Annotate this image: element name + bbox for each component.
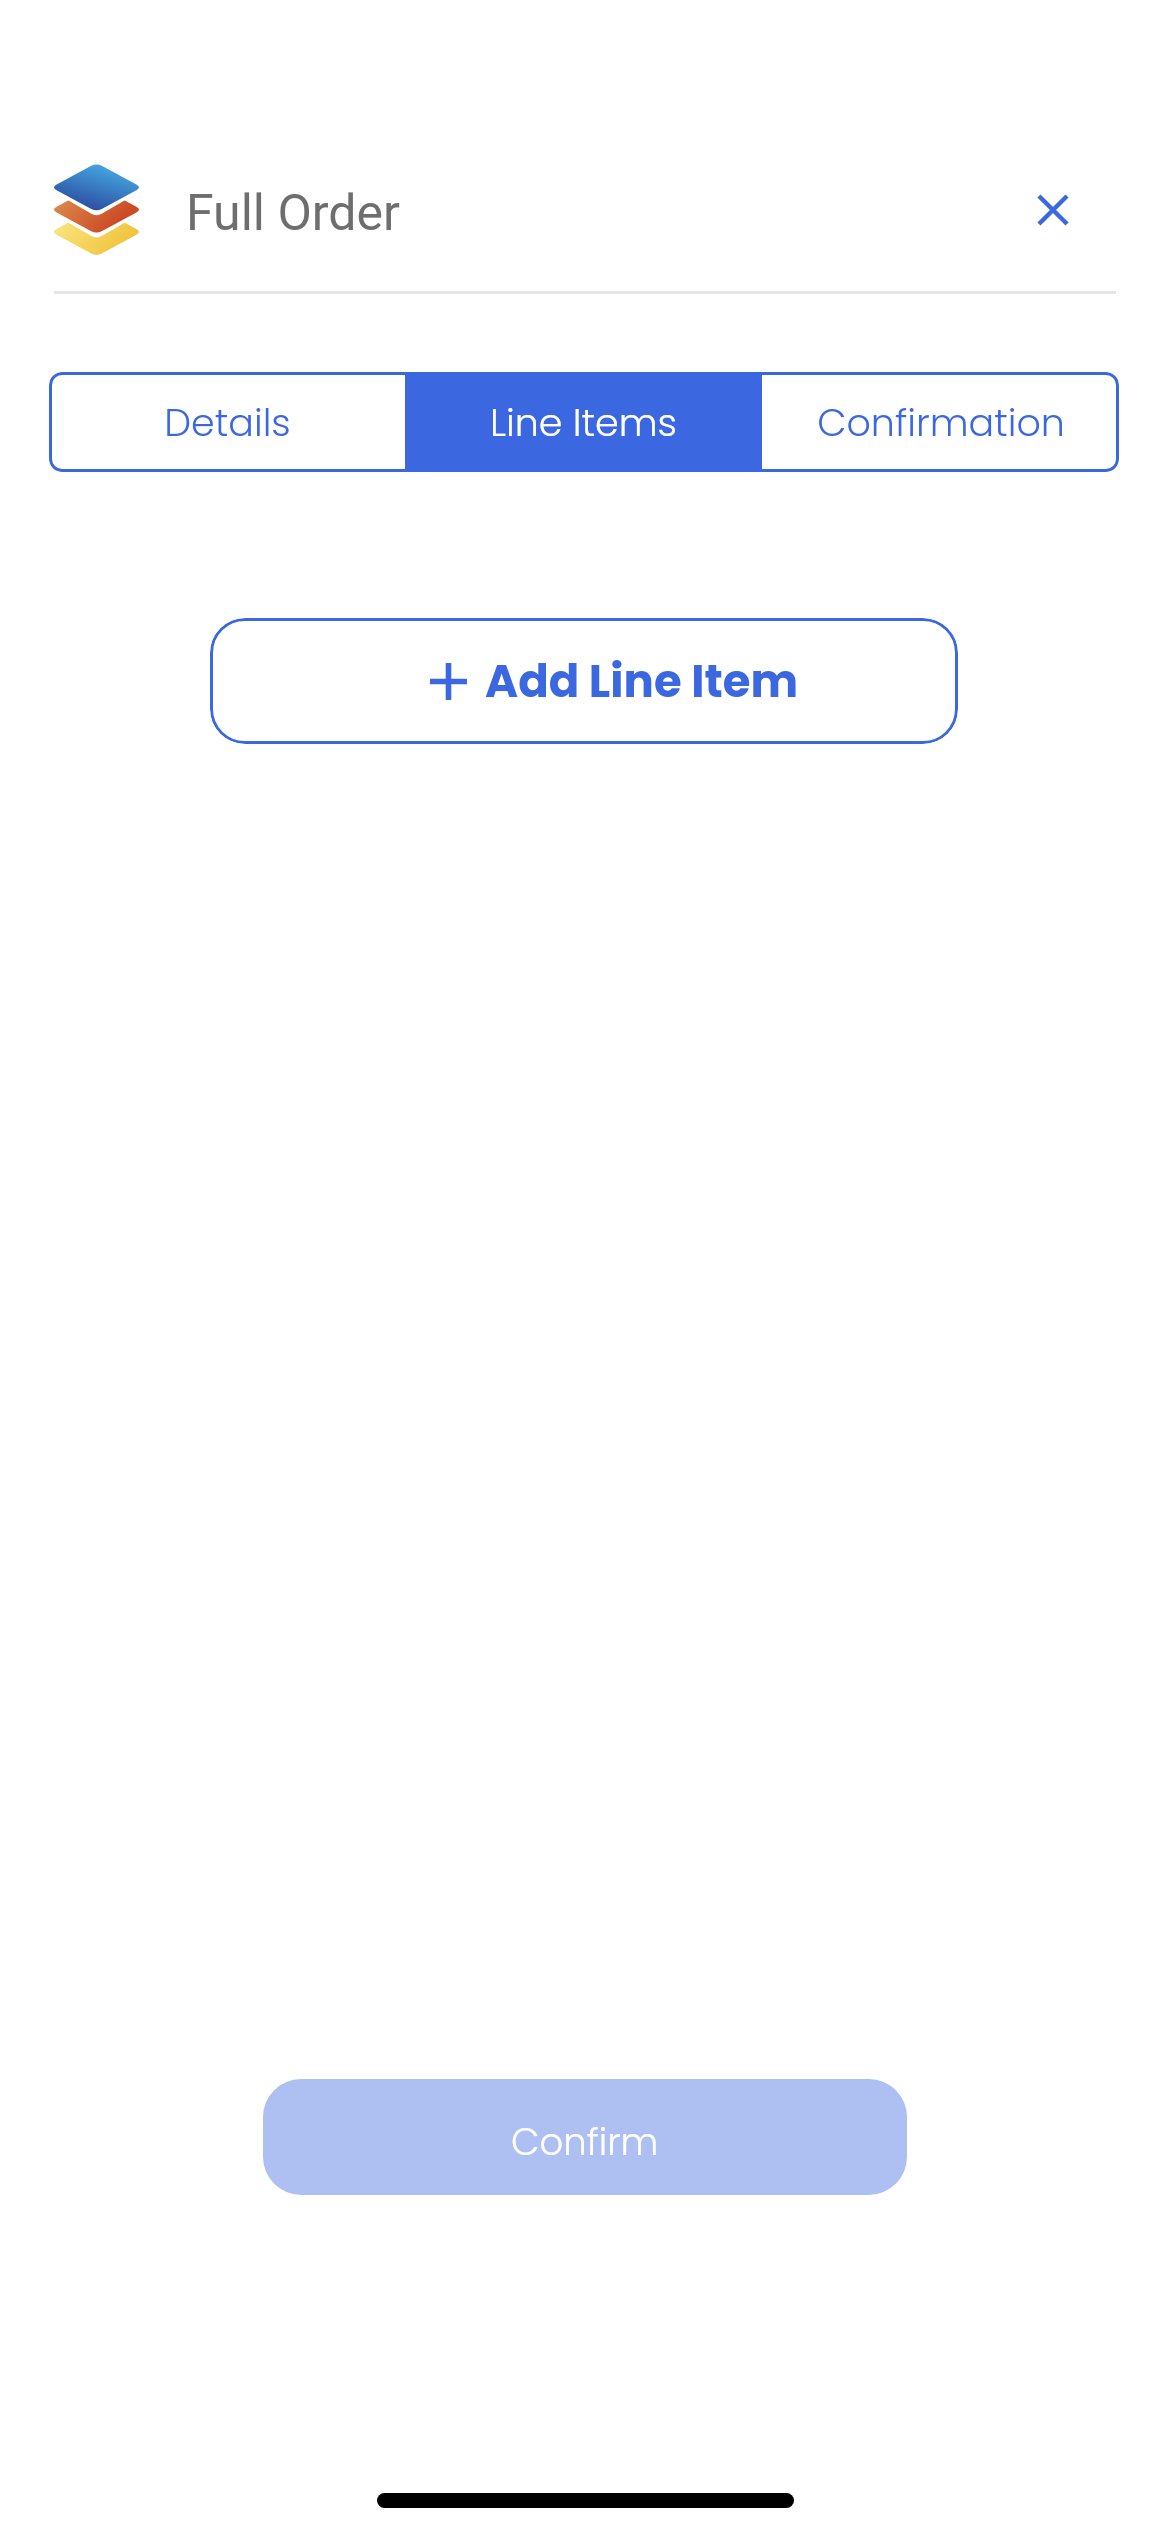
- button[interactable]: Confirmation: [762, 372, 1119, 472]
- staticText: Full Order: [186, 184, 400, 243]
- staticText: Add Line Item: [485, 650, 799, 713]
- staticText: Confirmation: [817, 396, 1065, 449]
- staticText: Details: [164, 396, 291, 449]
- staticText: Confirm: [511, 2116, 659, 2168]
- button[interactable]: Confirm: [263, 2079, 907, 2195]
- button[interactable]: Add Line Item: [210, 618, 958, 744]
- button[interactable]: Details: [49, 372, 405, 472]
- staticText: Line Items: [490, 396, 677, 449]
- button[interactable]: Line Items: [405, 372, 762, 472]
- button[interactable]: Close: [1008, 165, 1098, 255]
